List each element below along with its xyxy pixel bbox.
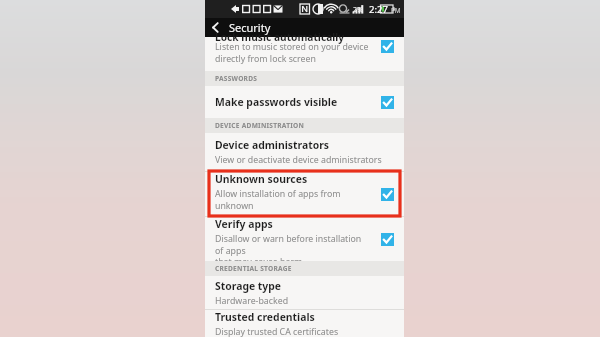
staticText: Device administrators — [215, 138, 330, 152]
staticText: Disallow or warn before installation of … — [215, 233, 370, 261]
button[interactable]: Toggle setting — [381, 233, 394, 246]
staticText: PASSWORDS — [215, 74, 258, 83]
button[interactable]: Back — [205, 18, 224, 37]
staticText: View or deactivate device administrators — [215, 154, 382, 166]
button[interactable]: Unknown sources — [205, 172, 404, 216]
staticText: Allow installation of apps from unknown … — [215, 188, 370, 216]
staticText: 2:27 — [369, 3, 389, 16]
button[interactable]: Toggle setting — [381, 40, 394, 53]
staticText: Make passwords visible — [215, 95, 338, 109]
staticText: Storage type — [215, 279, 282, 293]
staticText: Verify apps — [215, 217, 273, 231]
staticText: Unknown sources — [215, 172, 308, 186]
staticText: Display trusted CA certificates — [215, 326, 339, 337]
staticText: CREDENTIAL STORAGE — [215, 264, 292, 273]
button[interactable]: Storage type — [205, 276, 404, 309]
button[interactable]: Trusted credentials — [205, 310, 404, 337]
button[interactable]: Device administrators — [205, 133, 404, 171]
button[interactable]: Lock music automatically — [205, 37, 404, 71]
staticText: PM — [391, 6, 401, 15]
staticText: DEVICE ADMINISTRATION — [215, 121, 305, 130]
staticText: Listen to music stored on your device di… — [215, 41, 369, 65]
staticText: Lock music automatically — [215, 30, 345, 44]
staticText: 2% — [353, 4, 364, 14]
button[interactable]: Toggle setting — [381, 96, 394, 109]
button[interactable]: Verify apps — [205, 217, 404, 261]
button[interactable]: Toggle setting — [381, 188, 394, 201]
staticText: Hardware-backed — [215, 295, 289, 307]
staticText: Security — [229, 20, 271, 35]
staticText: Trusted credentials — [215, 310, 315, 324]
button[interactable]: Make passwords visible — [205, 86, 404, 118]
